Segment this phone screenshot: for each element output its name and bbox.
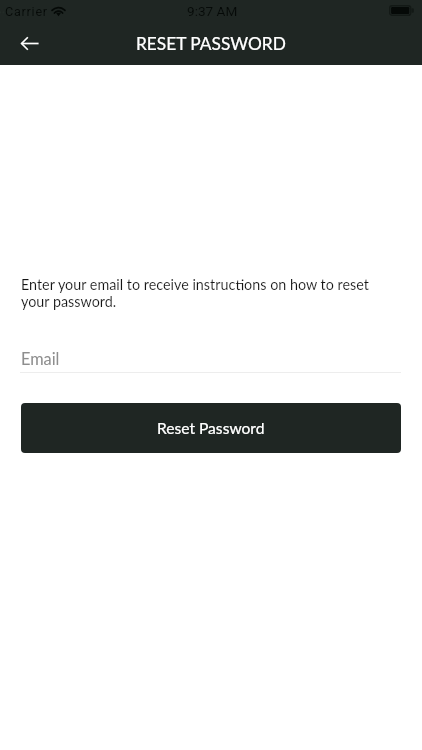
button[interactable]: Reset Password [21,403,401,453]
staticText: Carrier [5,4,48,19]
staticText: Email [21,349,60,369]
staticText: Reset Password [157,419,265,438]
staticText: RESET PASSWORD [136,33,286,54]
staticText: Enter your email to receive instructions… [21,276,373,310]
button[interactable]: Back [6,21,54,65]
staticText: 9:37 AM [187,3,238,19]
button[interactable]: Email [20,349,401,373]
